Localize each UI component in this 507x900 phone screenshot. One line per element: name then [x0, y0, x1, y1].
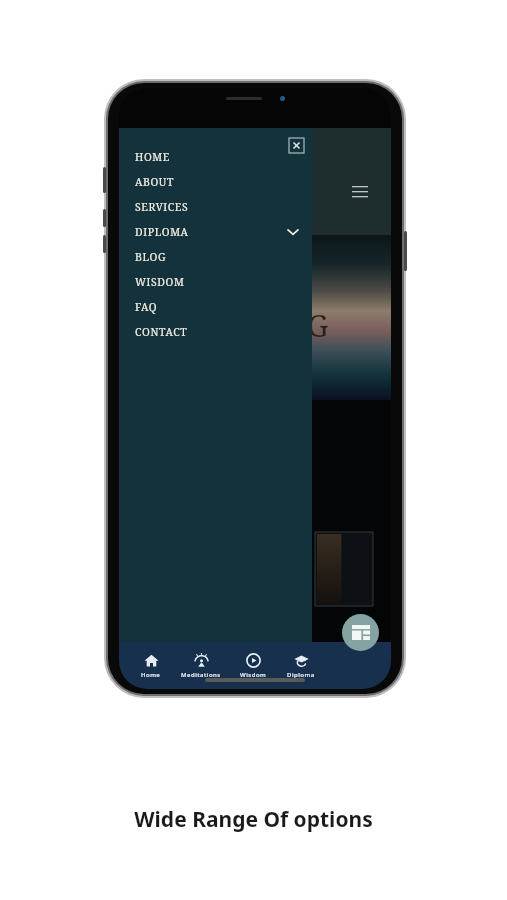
staticText: CONTACT	[135, 325, 188, 339]
button[interactable]: CONTACT	[119, 319, 312, 344]
staticText: ABOUT	[135, 175, 175, 189]
button[interactable]: FAQ	[119, 294, 312, 319]
button[interactable]: Open menu	[345, 177, 375, 207]
button[interactable]: SERVICES	[119, 194, 312, 219]
staticText: FAQ	[135, 300, 158, 314]
button[interactable]: Meditations	[177, 649, 225, 683]
staticText: G	[307, 305, 329, 346]
button[interactable]: WISDOM	[119, 269, 312, 294]
button[interactable]: Wisdom	[236, 649, 271, 683]
staticText: Wisdom	[240, 671, 267, 679]
staticText: Home	[141, 671, 161, 679]
button[interactable]: DIPLOMA	[119, 219, 312, 244]
staticText: SERVICES	[135, 200, 189, 214]
button[interactable]: BLOG	[119, 244, 312, 269]
button[interactable]: Dashboard	[342, 614, 379, 651]
button[interactable]: Close menu	[286, 135, 306, 155]
staticText: WISDOM	[135, 275, 185, 289]
staticText: Diploma	[287, 671, 315, 679]
staticText: Meditations	[181, 671, 221, 679]
staticText: Wide Range Of options	[0, 805, 507, 834]
button[interactable]: HOME	[119, 144, 312, 169]
staticText: HOME	[135, 150, 170, 164]
staticText: DIPLOMA	[135, 225, 189, 239]
button[interactable]: Home	[137, 649, 165, 683]
button[interactable]: Diploma	[283, 649, 319, 683]
button[interactable]: ABOUT	[119, 169, 312, 194]
staticText: BLOG	[135, 250, 167, 264]
